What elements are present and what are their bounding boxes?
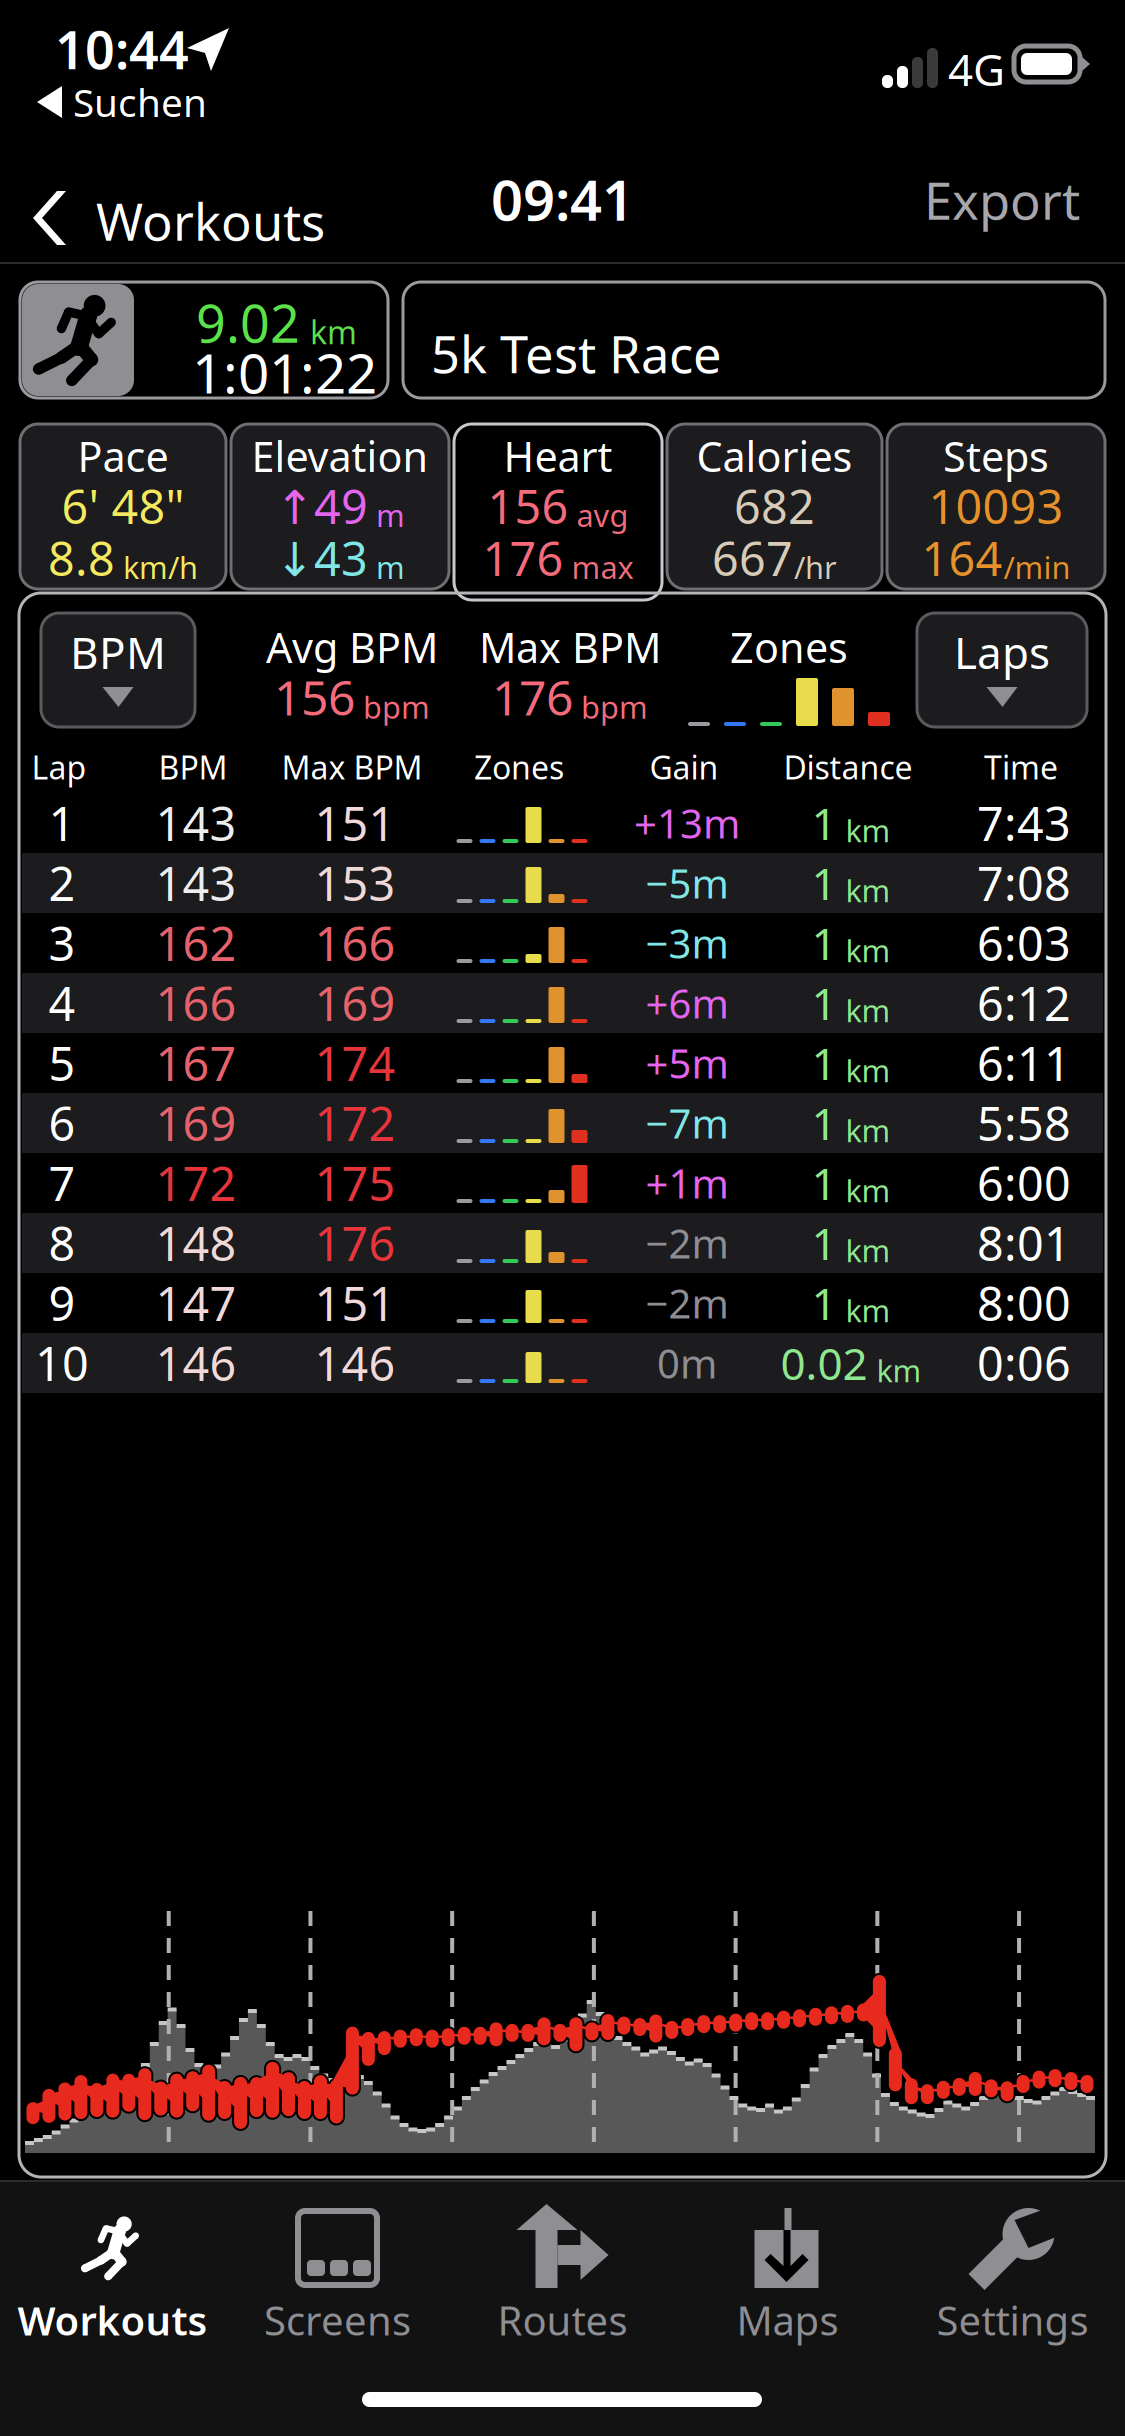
staticText: −2m: [645, 1276, 728, 1329]
staticText: +1m: [645, 1156, 728, 1209]
staticText: 8:00: [977, 1272, 1071, 1334]
button[interactable]: Heart: [454, 424, 662, 600]
staticText: Max BPM: [479, 620, 661, 674]
staticText: km: [845, 990, 890, 1031]
staticText: max: [571, 547, 633, 587]
staticText: Gain: [649, 746, 718, 788]
staticText: Workouts: [96, 187, 325, 255]
staticText: Elevation: [251, 429, 428, 483]
staticText: 9: [48, 1272, 75, 1334]
staticText: Maps: [736, 2293, 838, 2346]
staticText: 10093: [928, 475, 1063, 537]
staticText: 143: [155, 852, 236, 914]
button[interactable]: Pace: [20, 424, 226, 600]
staticText: 174: [314, 1032, 395, 1094]
staticText: Pace: [77, 429, 168, 483]
staticText: km: [845, 1110, 890, 1151]
staticText: 166: [314, 912, 395, 974]
button[interactable]: 9.02: [20, 282, 388, 398]
button[interactable]: Maps: [675, 2190, 900, 2340]
staticText: 147: [155, 1272, 236, 1334]
button[interactable]: Screens: [225, 2190, 450, 2340]
staticText: +5m: [645, 1036, 728, 1089]
staticText: 7: [48, 1152, 75, 1214]
button[interactable]: 5: [22, 1033, 1103, 1093]
button[interactable]: Settings: [900, 2190, 1125, 2340]
staticText: km: [876, 1350, 921, 1391]
staticText: 1: [811, 1214, 836, 1272]
button[interactable]: 4: [22, 973, 1103, 1033]
staticText: 4G: [948, 40, 1005, 98]
staticText: 6:00: [977, 1152, 1071, 1214]
button[interactable]: Laps: [917, 613, 1087, 727]
staticText: Routes: [497, 2293, 627, 2346]
staticText: km: [845, 1230, 890, 1271]
staticText: 6:11: [977, 1032, 1071, 1094]
staticText: 1: [811, 974, 836, 1032]
staticText: 10:44: [55, 14, 189, 84]
staticText: 169: [314, 972, 395, 1034]
button[interactable]: 10: [22, 1333, 1103, 1393]
staticText: −2m: [645, 1216, 728, 1269]
staticText: ↓43: [275, 527, 368, 589]
staticText: 1: [811, 794, 836, 852]
button[interactable]: 6: [22, 1093, 1103, 1153]
staticText: 146: [314, 1332, 395, 1394]
staticText: 5: [48, 1032, 75, 1094]
staticText: 1:01:22: [192, 336, 377, 409]
staticText: 6:12: [977, 972, 1071, 1034]
staticText: 1: [811, 914, 836, 972]
button[interactable]: 1: [22, 793, 1103, 853]
button[interactable]: Export: [918, 152, 1125, 248]
staticText: km: [845, 1050, 890, 1091]
staticText: 09:41: [491, 162, 634, 236]
staticText: −7m: [645, 1096, 728, 1149]
button[interactable]: Calories: [667, 424, 882, 600]
staticText: 0m: [657, 1336, 717, 1389]
staticText: 3: [48, 912, 75, 974]
staticText: 1: [811, 1034, 836, 1092]
button[interactable]: Workouts: [0, 152, 370, 248]
staticText: 176: [482, 527, 563, 589]
staticText: 148: [155, 1212, 236, 1274]
staticText: 176: [314, 1212, 395, 1274]
staticText: Suchen: [73, 76, 207, 128]
button[interactable]: 9: [22, 1273, 1103, 1333]
button[interactable]: 5k Test Race: [403, 282, 1105, 398]
staticText: 164: [921, 527, 1002, 589]
staticText: km: [310, 311, 357, 353]
staticText: km: [845, 810, 890, 851]
staticText: Avg BPM: [266, 620, 438, 674]
button[interactable]: BPM: [41, 613, 195, 727]
staticText: 175: [314, 1152, 395, 1214]
staticText: 172: [314, 1092, 395, 1154]
staticText: 0.02: [780, 1334, 867, 1392]
staticText: 176: [492, 665, 573, 729]
staticText: Zones: [474, 746, 564, 788]
staticText: 6:03: [977, 912, 1071, 974]
button[interactable]: Elevation: [231, 424, 449, 600]
staticText: 1: [48, 792, 75, 854]
staticText: −3m: [645, 916, 728, 969]
staticText: 151: [314, 1272, 395, 1334]
staticText: Time: [984, 746, 1058, 788]
staticText: 151: [314, 792, 395, 854]
staticText: avg: [576, 495, 628, 535]
staticText: +6m: [645, 976, 728, 1029]
staticText: 7:08: [977, 852, 1071, 914]
button[interactable]: 8: [22, 1213, 1103, 1273]
staticText: /hr: [794, 547, 837, 587]
staticText: Heart: [503, 429, 612, 483]
staticText: 8:01: [977, 1212, 1071, 1274]
button[interactable]: 3: [22, 913, 1103, 973]
button[interactable]: Workouts: [0, 2190, 225, 2340]
staticText: Max BPM: [281, 746, 422, 788]
staticText: 2: [48, 852, 75, 914]
staticText: 682: [734, 475, 815, 537]
staticText: 6: [48, 1092, 75, 1154]
button[interactable]: Routes: [450, 2190, 675, 2340]
staticText: 7:43: [977, 792, 1071, 854]
button[interactable]: 7: [22, 1153, 1103, 1213]
button[interactable]: Steps: [887, 424, 1105, 600]
button[interactable]: 2: [22, 853, 1103, 913]
